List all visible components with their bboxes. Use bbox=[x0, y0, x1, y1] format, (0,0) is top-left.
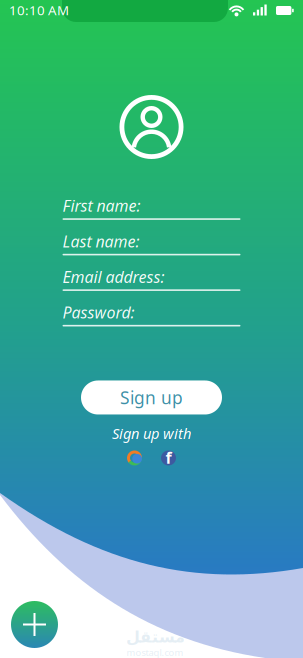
staticText: 10:10 AM bbox=[9, 1, 69, 19]
staticText: mostaql.com bbox=[126, 646, 183, 658]
staticText: Sign up with bbox=[112, 423, 191, 443]
button[interactable]: Sign up with Google bbox=[124, 448, 144, 468]
staticText: Password: bbox=[62, 302, 134, 323]
staticText: First name: bbox=[62, 195, 140, 216]
staticText: f bbox=[165, 447, 171, 468]
button[interactable]: Add bbox=[11, 601, 58, 648]
staticText: Last name: bbox=[62, 230, 139, 252]
staticText: مستقل bbox=[125, 628, 184, 646]
button[interactable]: Sign up with Facebook bbox=[158, 448, 178, 468]
staticText: Email address: bbox=[62, 266, 164, 287]
button[interactable]: Sign up bbox=[81, 380, 222, 414]
staticText: Sign up bbox=[120, 386, 183, 409]
